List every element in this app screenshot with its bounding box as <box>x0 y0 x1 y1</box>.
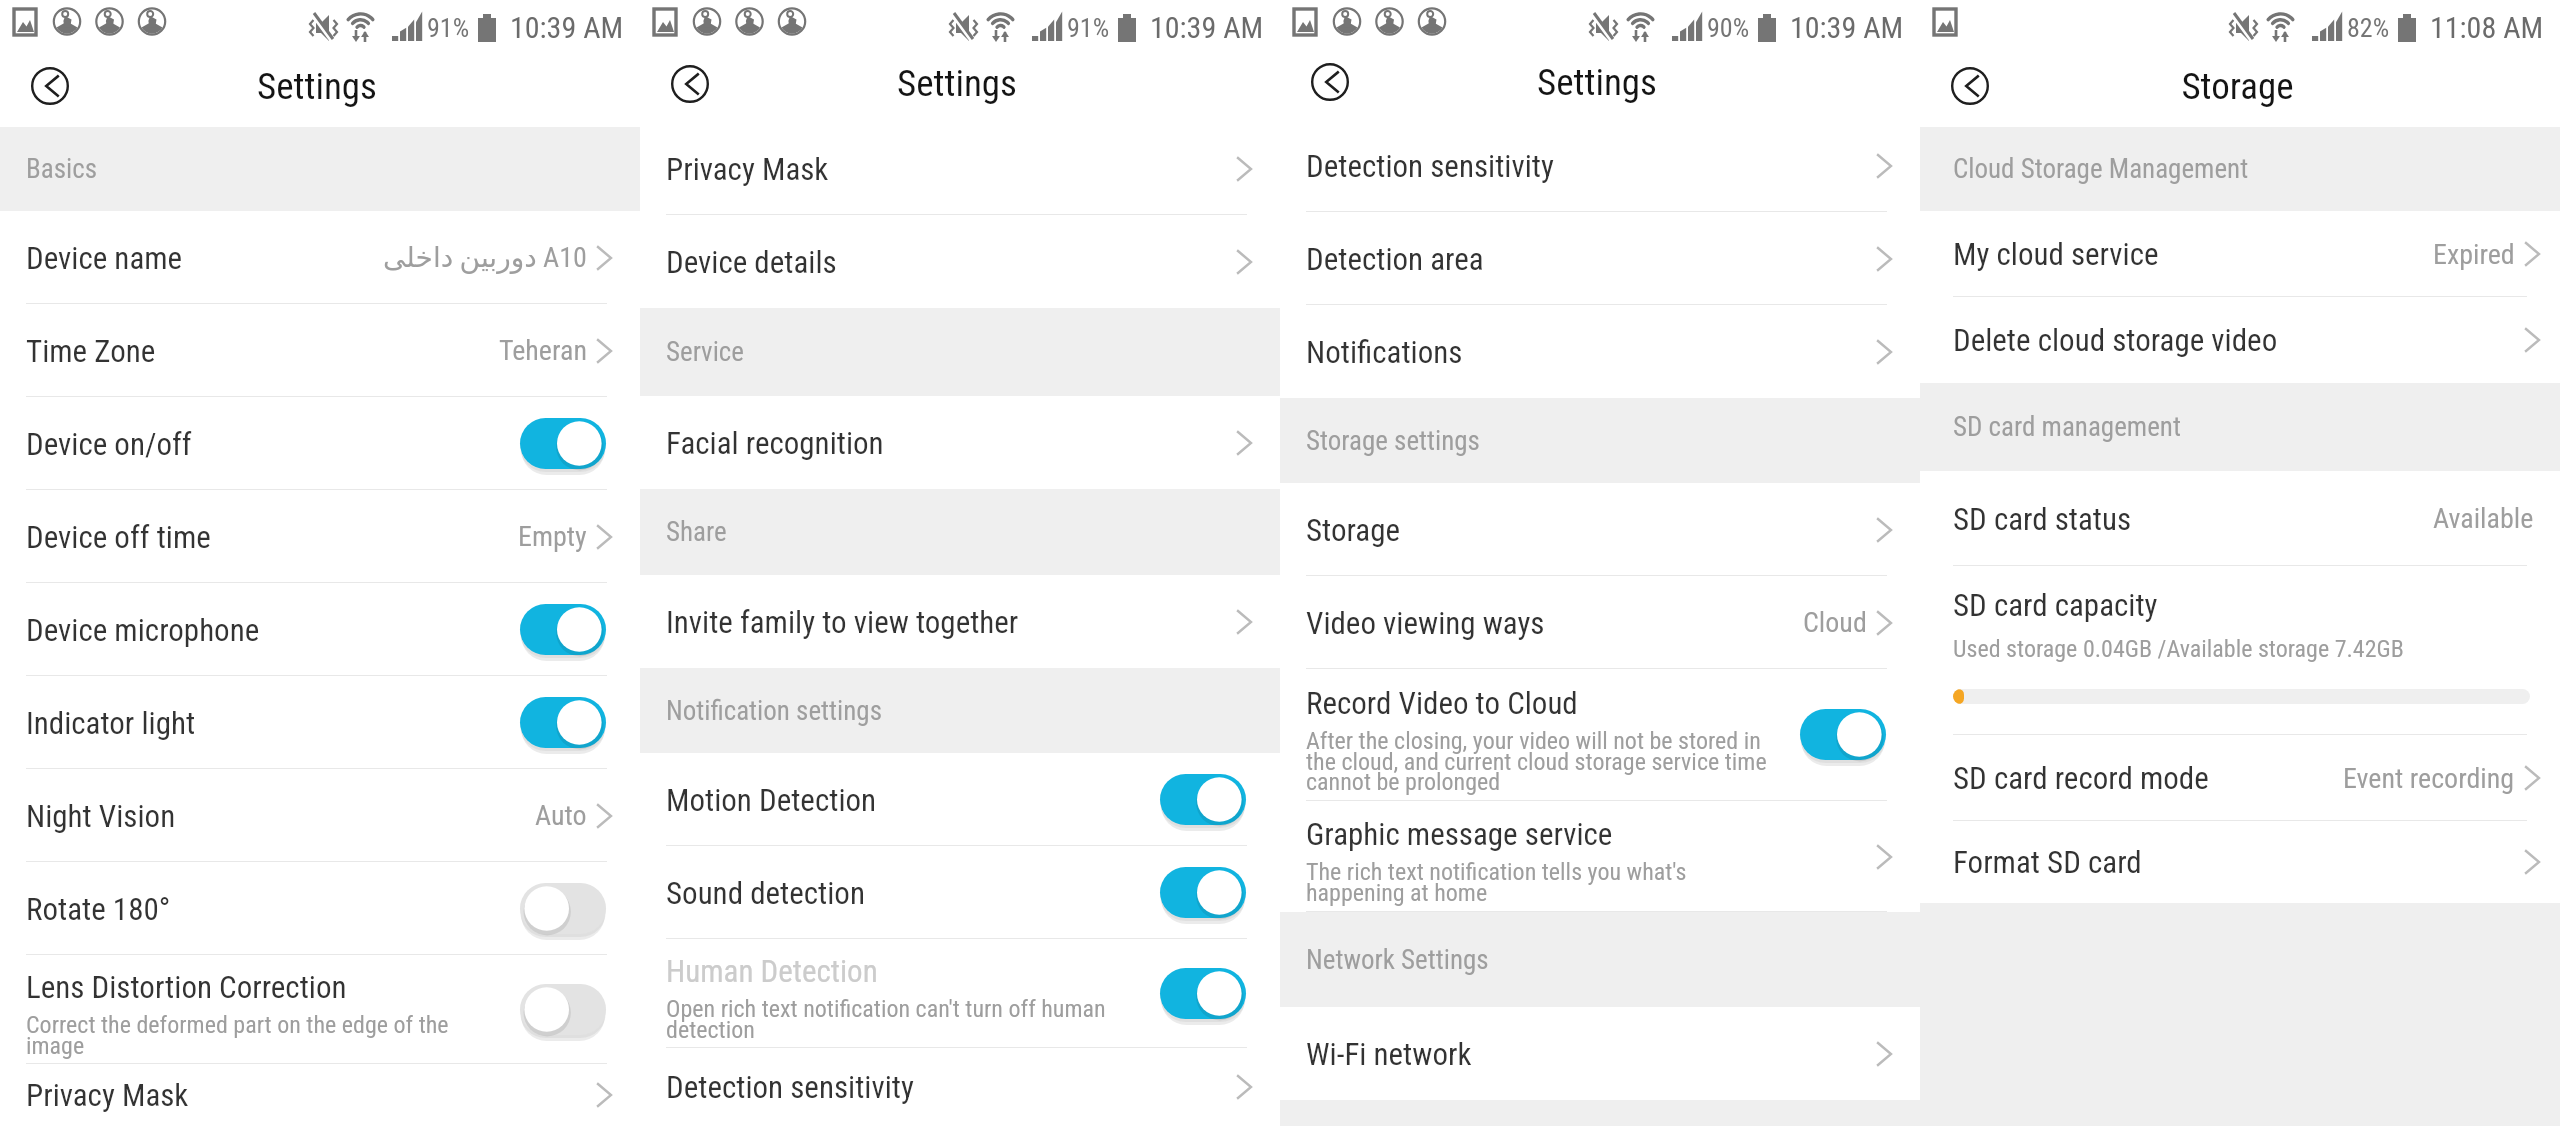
button[interactable]: Rotate 180° <box>0 862 640 955</box>
staticText: Device off time <box>26 519 211 555</box>
button[interactable]: Detection area <box>1280 212 1920 305</box>
button[interactable]: Back <box>1949 65 1991 107</box>
staticText: Detection area <box>1306 241 1484 277</box>
staticText: 82% <box>2347 13 2390 43</box>
staticText: Indicator light <box>26 705 196 741</box>
button[interactable]: Invite family to view together <box>640 575 1280 668</box>
staticText: Settings <box>257 65 377 108</box>
staticText: Human Detection <box>666 953 878 989</box>
staticText: Device details <box>666 244 837 280</box>
staticText: Service <box>666 336 744 368</box>
button[interactable]: Rotate 180°, off <box>520 879 606 939</box>
button[interactable]: Device on/off, on <box>520 414 606 474</box>
staticText: Invite family to view together <box>666 604 1019 640</box>
button[interactable]: Motion Detection <box>640 753 1280 846</box>
staticText: Expired <box>2433 238 2515 271</box>
button[interactable]: My cloud service <box>1920 211 2560 297</box>
button[interactable]: Human Detection <box>640 939 1280 1048</box>
button[interactable]: Indicator light, on <box>520 693 606 753</box>
button[interactable]: SD card record mode <box>1920 735 2560 821</box>
staticText: Rotate 180° <box>26 891 171 927</box>
staticText: 10:39 AM <box>1150 10 1264 45</box>
staticText: 90% <box>1707 13 1750 43</box>
button[interactable]: Device on/off <box>0 397 640 490</box>
staticText: Cloud <box>1803 606 1867 639</box>
button[interactable]: Device microphone <box>0 583 640 676</box>
button[interactable]: Back <box>669 63 711 105</box>
staticText: Time Zone <box>26 333 156 369</box>
staticText: 91% <box>427 13 470 43</box>
staticText: 10:39 AM <box>1790 10 1904 45</box>
staticText: 11:08 AM <box>2430 10 2544 45</box>
staticText: Video viewing ways <box>1306 605 1545 641</box>
staticText: Device on/off <box>26 426 192 462</box>
button[interactable]: SD card status <box>1920 471 2560 566</box>
button[interactable]: Record Video to Cloud, on <box>1800 705 1886 765</box>
staticText: Sound detection <box>666 875 865 911</box>
button[interactable]: Detection sensitivity <box>640 1048 1280 1126</box>
button[interactable]: Device microphone, on <box>520 600 606 660</box>
button[interactable]: Motion Detection, on <box>1160 770 1246 830</box>
staticText: Storage settings <box>1306 425 1480 457</box>
staticText: Correct the deformed part on the edge of… <box>26 1011 449 1060</box>
staticText: Night Vision <box>26 798 176 834</box>
staticText: Format SD card <box>1953 844 2142 880</box>
button[interactable]: Lens Distortion Correction, off <box>520 980 606 1040</box>
staticText: Basics <box>26 153 97 185</box>
staticText: Settings <box>1537 61 1657 104</box>
button[interactable]: Privacy Mask <box>640 122 1280 215</box>
staticText: My cloud service <box>1953 236 2159 272</box>
staticText: Notifications <box>1306 334 1463 370</box>
staticText: Notification settings <box>666 695 882 727</box>
staticText: SD card management <box>1953 411 2181 443</box>
staticText: Storage <box>2181 65 2294 108</box>
button[interactable]: Sound detection <box>640 846 1280 939</box>
button[interactable]: Graphic message service <box>1280 801 1920 912</box>
button[interactable]: Device name <box>0 211 640 304</box>
staticText: Event recording <box>2343 762 2515 795</box>
button[interactable]: Time Zone <box>0 304 640 397</box>
button[interactable]: Detection sensitivity <box>1280 119 1920 212</box>
button[interactable]: Format SD card <box>1920 821 2560 903</box>
staticText: Lens Distortion Correction <box>26 969 347 1005</box>
staticText: Record Video to Cloud <box>1306 685 1578 721</box>
staticText: Auto <box>535 799 587 832</box>
button[interactable]: Privacy Mask <box>0 1064 640 1126</box>
staticText: Delete cloud storage video <box>1953 322 2278 358</box>
button[interactable]: Device off time <box>0 490 640 583</box>
staticText: Teheran <box>499 334 587 367</box>
button[interactable]: Lens Distortion Correction <box>0 955 640 1064</box>
button[interactable]: Device details <box>640 215 1280 308</box>
staticText: دوربین داخلی A10 <box>383 241 587 274</box>
staticText: 91% <box>1067 13 1110 43</box>
staticText: Wi-Fi network <box>1306 1036 1472 1072</box>
staticText: SD card status <box>1953 501 2132 537</box>
button[interactable]: Storage <box>1280 483 1920 576</box>
button[interactable]: Delete cloud storage video <box>1920 297 2560 383</box>
button[interactable]: Night Vision <box>0 769 640 862</box>
button[interactable]: Human Detection, on <box>1160 964 1246 1024</box>
staticText: SD card capacity <box>1953 587 2158 623</box>
button[interactable]: Notifications <box>1280 305 1920 398</box>
button[interactable]: Facial recognition <box>640 396 1280 489</box>
staticText: Graphic message service <box>1306 816 1613 852</box>
staticText: Facial recognition <box>666 425 884 461</box>
button[interactable]: Record Video to Cloud <box>1280 669 1920 801</box>
button[interactable]: Back <box>1309 61 1351 103</box>
staticText: Device name <box>26 240 183 276</box>
staticText: Open rich text notification can't turn o… <box>666 995 1106 1044</box>
button[interactable]: Wi-Fi network <box>1280 1007 1920 1100</box>
staticText: Detection sensitivity <box>1306 148 1554 184</box>
staticText: Share <box>666 516 727 548</box>
button[interactable]: Sound detection, on <box>1160 863 1246 923</box>
button[interactable]: Back <box>29 65 71 107</box>
staticText: Cloud Storage Management <box>1953 153 2249 185</box>
staticText: Network Settings <box>1306 944 1489 976</box>
button[interactable]: Indicator light <box>0 676 640 769</box>
staticText: After the closing, your video will not b… <box>1306 727 1767 796</box>
staticText: Storage <box>1306 512 1401 548</box>
button[interactable]: Video viewing ways <box>1280 576 1920 669</box>
staticText: Privacy Mask <box>666 151 829 187</box>
staticText: Privacy Mask <box>26 1077 189 1113</box>
staticText: Device microphone <box>26 612 260 648</box>
